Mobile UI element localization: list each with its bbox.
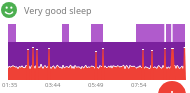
- staticText: 01:35: [2, 81, 18, 89]
- staticText: 03:44: [45, 81, 61, 89]
- button[interactable]: Alarm: [158, 81, 186, 93]
- button[interactable]: Very good sleep: [0, 0, 190, 19]
- staticText: 07:54: [131, 81, 147, 89]
- staticText: 05:49: [88, 81, 104, 89]
- staticText: Very good sleep: [24, 4, 92, 16]
